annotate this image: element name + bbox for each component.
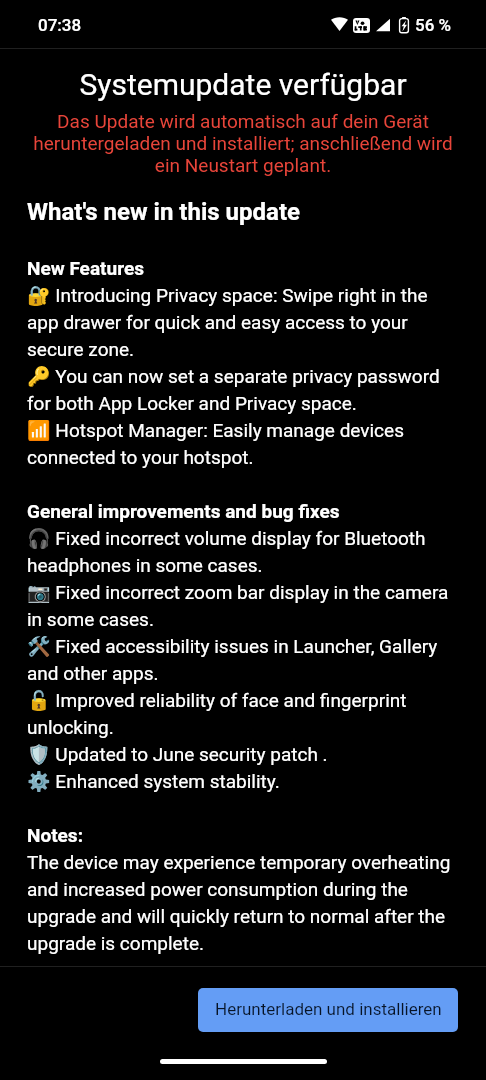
staticText: 07:38 (38, 15, 82, 35)
staticText: Herunterladen und installieren (215, 999, 442, 1019)
staticText: 🎧 Fixed incorrect volume display for Blu… (27, 524, 460, 578)
staticText: New Features (27, 254, 144, 281)
other: Mobile signal (376, 18, 390, 32)
staticText: 56 % (415, 15, 452, 35)
other: Battery charging (399, 17, 409, 33)
staticText: The device may experience temporary over… (27, 848, 460, 956)
staticText: Notes: (27, 821, 83, 848)
staticText: 🛠️ Fixed accessibility issues in Launche… (27, 632, 460, 686)
staticText: 📶 Hotspot Manager: Easily manage devices… (27, 416, 460, 470)
staticText: 🛡️ Updated to June security patch . (27, 740, 328, 767)
staticText: ⚙️ Enhanced system stability. (27, 767, 280, 794)
staticText: 📷 Fixed incorrect zoom bar display in th… (27, 578, 460, 632)
staticText: 🔓 Improved reliability of face and finge… (27, 686, 460, 740)
staticText: 🔐 Introducing Privacy space: Swipe right… (27, 281, 460, 362)
staticText: Systemupdate verfügbar (0, 66, 486, 102)
other: Wi-Fi (331, 18, 348, 32)
staticText: Das Update wird automatisch auf dein Ger… (26, 111, 460, 177)
staticText: 🔑 You can now set a separate privacy pas… (27, 362, 460, 416)
staticText: What's new in this update (27, 196, 301, 226)
staticText: General improvements and bug fixes (27, 497, 340, 524)
button[interactable]: Herunterladen und installieren (198, 988, 458, 1032)
other: VoLTE (353, 18, 370, 33)
